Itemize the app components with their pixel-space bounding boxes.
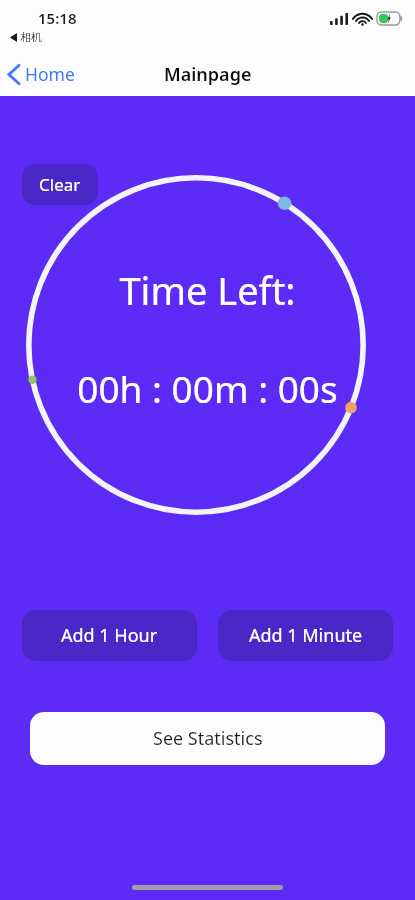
button[interactable]: Back to 相机: [10, 30, 42, 44]
staticText: 相机: [20, 30, 42, 44]
button[interactable]: Clear: [22, 164, 98, 205]
button[interactable]: Add 1 Minute: [218, 610, 393, 661]
button[interactable]: See Statistics: [30, 712, 385, 765]
staticText: Clear: [39, 173, 81, 196]
staticText: 00h : 00m : 00s: [77, 363, 338, 413]
staticText: Mainpage: [164, 62, 252, 87]
staticText: Time Left:: [119, 264, 296, 316]
staticText: Home: [25, 62, 75, 86]
button[interactable]: Home: [0, 56, 85, 92]
button[interactable]: Add 1 Hour: [22, 610, 197, 661]
staticText: Add 1 Minute: [249, 623, 363, 648]
staticText: See Statistics: [153, 726, 263, 751]
staticText: Add 1 Hour: [61, 623, 158, 648]
staticText: 15:18: [38, 8, 77, 28]
